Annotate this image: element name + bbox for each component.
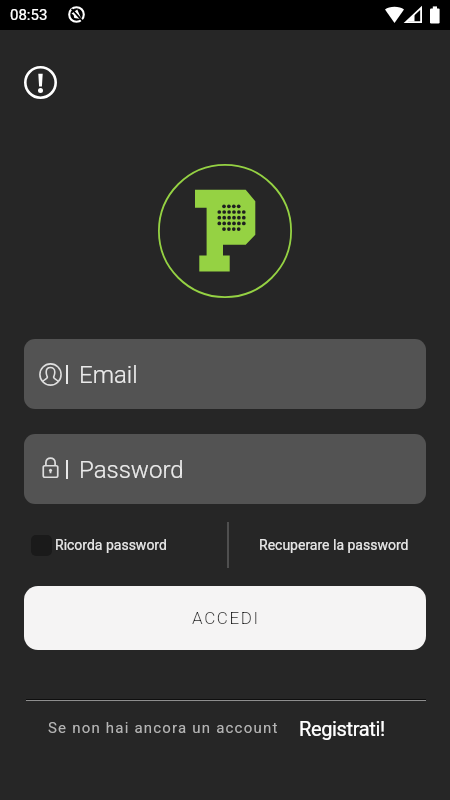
staticText: Registrati! <box>299 717 385 740</box>
staticText: Se non hai ancora un account <box>48 719 279 737</box>
button[interactable]: Se non hai ancora un account <box>40 712 271 744</box>
staticText: Ricorda password <box>55 537 167 553</box>
staticText: ACCEDI <box>192 608 260 628</box>
button[interactable]: Password <box>24 434 426 504</box>
staticText: 08:53 <box>10 6 48 24</box>
button[interactable]: Recuperare la password <box>230 521 450 569</box>
staticText: Password <box>79 456 184 484</box>
staticText: Recuperare la password <box>259 537 409 553</box>
button[interactable]: Ricorda password <box>31 521 228 569</box>
button[interactable]: ACCEDI <box>24 586 426 650</box>
staticText: Email <box>79 361 138 389</box>
button[interactable]: Email <box>24 339 426 409</box>
button[interactable]: Info <box>24 66 57 99</box>
button[interactable]: Registrati! <box>292 710 378 746</box>
